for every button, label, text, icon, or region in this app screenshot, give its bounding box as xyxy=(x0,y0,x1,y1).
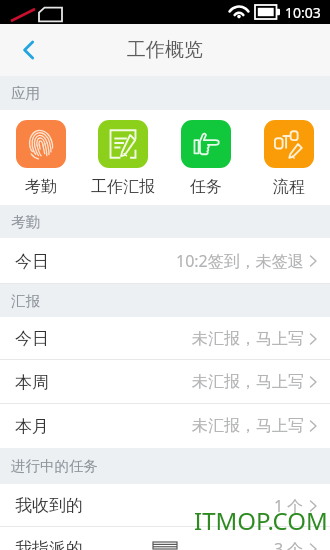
button[interactable]: 今日 xyxy=(0,317,330,360)
button[interactable]: 本周 xyxy=(0,360,330,404)
staticText: 本周 xyxy=(15,372,49,393)
staticText: 未汇报，马上写 xyxy=(192,372,304,392)
staticText: 未汇报，马上写 xyxy=(192,329,304,349)
staticText: 1 个 xyxy=(274,495,304,517)
staticText: ITMOP.COM xyxy=(194,504,330,537)
staticText: 流程 xyxy=(273,177,305,197)
staticText: 考勤 xyxy=(25,177,57,197)
staticText: 今日 xyxy=(15,251,49,272)
staticText: 我指派的 xyxy=(15,538,83,550)
button[interactable]: 我收到的 xyxy=(0,484,330,527)
staticText: 应用 xyxy=(11,84,40,102)
button[interactable]: 今日 xyxy=(0,238,330,284)
button[interactable]: 考勤 xyxy=(0,110,82,205)
button[interactable]: 本月 xyxy=(0,404,330,448)
staticText: 汇报 xyxy=(11,292,40,310)
button[interactable]: Back xyxy=(0,24,56,76)
button[interactable]: 流程 xyxy=(247,110,330,205)
staticText: 3 个 xyxy=(274,538,304,550)
staticText: 未汇报，马上写 xyxy=(192,416,304,436)
staticText: 我收到的 xyxy=(15,495,83,516)
staticText: 工作概览 xyxy=(127,38,203,62)
button[interactable]: 工作汇报 xyxy=(82,110,164,205)
staticText: 工作汇报 xyxy=(91,177,155,197)
button[interactable]: 我指派的 xyxy=(0,527,330,550)
staticText: 10:03 xyxy=(285,3,321,22)
other: Menu xyxy=(153,542,177,549)
staticText: 10:2签到，未签退 xyxy=(176,250,304,272)
staticText: 任务 xyxy=(190,177,222,197)
staticText: 今日 xyxy=(15,328,49,349)
staticText: 进行中的任务 xyxy=(11,457,98,475)
button[interactable]: 任务 xyxy=(164,110,247,205)
staticText: 考勤 xyxy=(11,213,40,231)
staticText: 本月 xyxy=(15,416,49,437)
